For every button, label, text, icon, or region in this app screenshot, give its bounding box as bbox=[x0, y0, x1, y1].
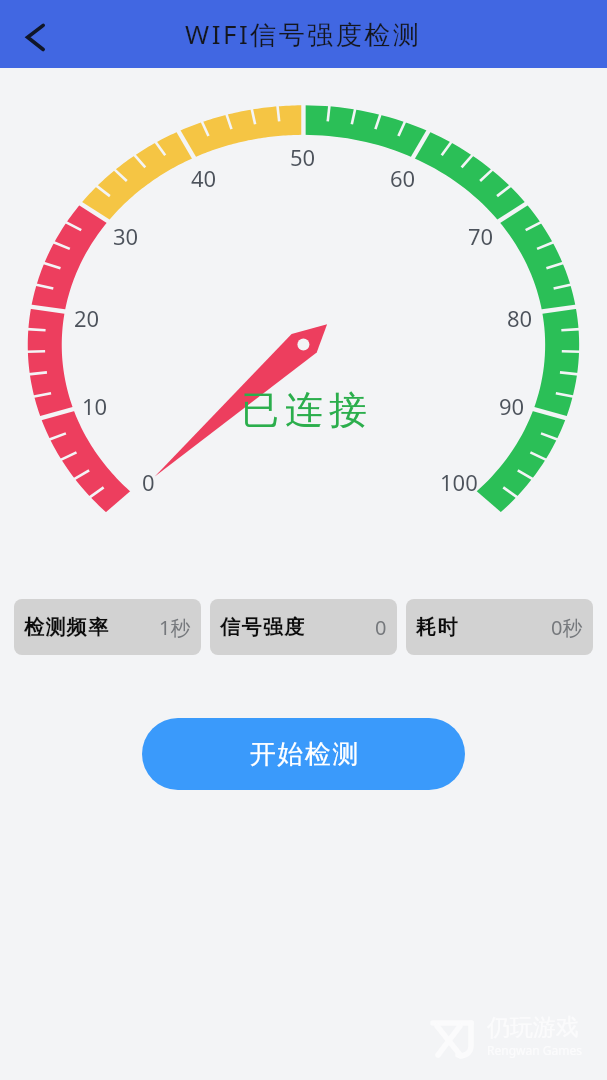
staticText: 60 bbox=[390, 163, 416, 193]
staticText: 已连接 bbox=[238, 386, 370, 434]
staticText: 90 bbox=[499, 391, 525, 421]
staticText: 1秒 bbox=[159, 614, 191, 641]
staticText: 40 bbox=[191, 163, 217, 193]
staticText: 0秒 bbox=[551, 614, 583, 641]
staticText: 仍玩游戏 bbox=[487, 1013, 579, 1042]
button[interactable]: 信号强度 bbox=[210, 599, 397, 655]
staticText: 0 bbox=[142, 467, 155, 497]
staticText: 耗时 bbox=[416, 615, 459, 640]
staticText: 开始检测 bbox=[249, 738, 359, 771]
button[interactable]: 检测频率 bbox=[14, 599, 201, 655]
staticText: 100 bbox=[440, 467, 478, 497]
staticText: 检测频率 bbox=[24, 615, 110, 640]
button[interactable]: Back bbox=[0, 0, 60, 68]
staticText: 80 bbox=[507, 303, 533, 333]
staticText: 10 bbox=[82, 391, 108, 421]
staticText: 70 bbox=[468, 221, 494, 251]
staticText: 20 bbox=[74, 303, 100, 333]
button[interactable]: 耗时 bbox=[406, 599, 593, 655]
staticText: WIFI信号强度检测 bbox=[185, 16, 422, 52]
staticText: 0 bbox=[375, 614, 387, 641]
staticText: 50 bbox=[290, 142, 316, 172]
button[interactable]: 开始检测 bbox=[142, 718, 465, 790]
staticText: 30 bbox=[113, 221, 139, 251]
staticText: 信号强度 bbox=[220, 615, 306, 640]
